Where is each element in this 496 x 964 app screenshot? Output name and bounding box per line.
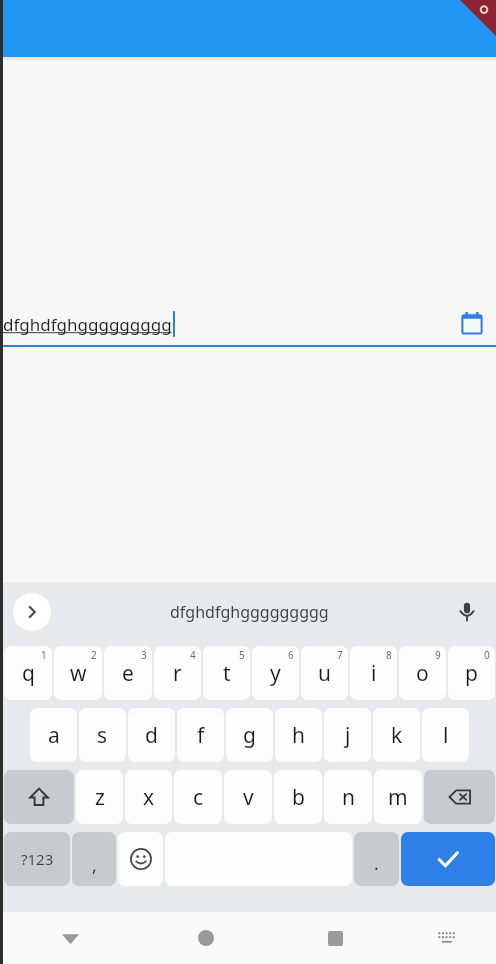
button[interactable]: Emoji [118, 832, 163, 886]
button[interactable]: dfghdfghggggggggg [51, 582, 448, 642]
staticText: 9 [435, 648, 441, 662]
staticText: y [270, 659, 281, 688]
staticText: a [48, 721, 60, 750]
button[interactable]: , [72, 832, 116, 886]
button[interactable]: a [30, 708, 77, 762]
staticText: i [371, 659, 377, 688]
staticText: 8 [386, 648, 392, 662]
staticText: 0 [484, 648, 490, 662]
staticText: k [391, 721, 403, 750]
staticText: g [243, 721, 256, 750]
staticText: w [70, 659, 87, 688]
button[interactable]: g [226, 708, 273, 762]
button[interactable]: r [154, 646, 201, 700]
button[interactable]: q [4, 646, 52, 700]
staticText: x [143, 783, 155, 812]
staticText: h [292, 721, 305, 750]
button[interactable]: h [275, 708, 322, 762]
staticText: s [97, 721, 108, 750]
staticText: ?123 [21, 849, 54, 869]
staticText: o [416, 659, 429, 688]
button[interactable]: More suggestions [13, 593, 51, 631]
button[interactable]: dfghdfghggggggggg [3, 303, 496, 347]
staticText: 1 [41, 648, 47, 662]
staticText: l [443, 721, 449, 750]
staticText: , [92, 853, 97, 878]
button[interactable]: Switch keyboard [397, 912, 496, 964]
button[interactable]: w [54, 646, 102, 700]
staticText: e [122, 659, 134, 688]
staticText: 2 [91, 648, 97, 662]
button[interactable]: x [125, 770, 172, 824]
button[interactable]: Hide keyboard [3, 912, 138, 964]
button[interactable]: z [76, 770, 123, 824]
staticText: m [388, 783, 408, 812]
staticText: dfghdfghggggggggg [3, 313, 172, 336]
staticText: b [292, 783, 305, 812]
staticText: p [465, 659, 478, 688]
staticText: 6 [288, 648, 294, 662]
staticText: d [145, 721, 158, 750]
button[interactable]: b [274, 770, 322, 824]
button[interactable]: Voice input [448, 593, 486, 631]
button[interactable]: y [252, 646, 299, 700]
button[interactable]: v [224, 770, 272, 824]
button[interactable]: Backspace [424, 770, 495, 824]
button[interactable]: c [174, 770, 222, 824]
staticText: r [173, 659, 182, 688]
button[interactable]: o [399, 646, 446, 700]
button[interactable]: l [422, 708, 469, 762]
staticText: q [22, 659, 35, 688]
button[interactable]: Shift [4, 770, 74, 824]
staticText: v [243, 783, 254, 812]
staticText: 3 [141, 648, 147, 662]
button[interactable]: i [350, 646, 397, 700]
button[interactable]: f [177, 708, 224, 762]
button[interactable]: m [374, 770, 422, 824]
button[interactable]: j [324, 708, 371, 762]
staticText: j [345, 721, 351, 750]
staticText: dfghdfghggggggggg [170, 601, 329, 623]
staticText: n [342, 783, 355, 812]
button[interactable]: . [354, 832, 399, 886]
button[interactable]: t [203, 646, 250, 700]
staticText: z [95, 783, 105, 812]
staticText: u [318, 659, 331, 688]
button[interactable]: Enter [401, 832, 495, 886]
staticText: 7 [337, 648, 343, 662]
button[interactable]: s [79, 708, 126, 762]
staticText: c [193, 783, 204, 812]
staticText: f [197, 721, 205, 750]
staticText: 4 [190, 648, 196, 662]
button[interactable]: Pick date [448, 303, 496, 345]
button[interactable]: e [104, 646, 152, 700]
button[interactable]: Recents [274, 912, 397, 964]
staticText: t [223, 659, 231, 688]
staticText: . [374, 851, 379, 876]
button[interactable]: p [448, 646, 495, 700]
button[interactable]: Home [138, 912, 274, 964]
button[interactable]: n [324, 770, 372, 824]
button[interactable]: d [128, 708, 175, 762]
button[interactable]: u [301, 646, 348, 700]
staticText: 5 [239, 648, 245, 662]
button[interactable]: k [373, 708, 420, 762]
button[interactable]: ?123 [4, 832, 70, 886]
